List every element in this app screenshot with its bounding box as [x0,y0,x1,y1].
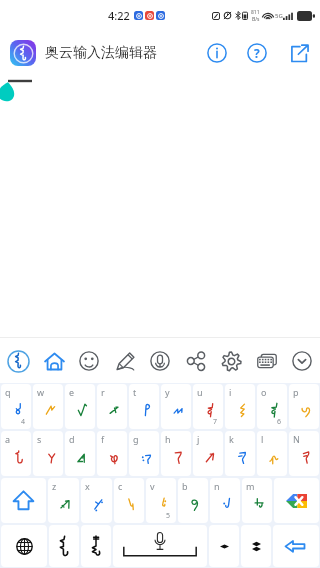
button[interactable]: i [225,384,255,429]
staticText: d [69,433,75,445]
button[interactable]: s [33,431,63,476]
staticText: z [52,480,57,492]
staticText: ? [254,45,260,61]
button[interactable]: Delete [274,478,319,523]
button[interactable]: h [161,431,191,476]
button[interactable]: m [242,478,272,523]
button[interactable]: d [65,431,95,476]
staticText: c [118,480,123,492]
button[interactable]: t [129,384,159,429]
button[interactable]: n [210,478,240,523]
button[interactable]: j [193,431,223,476]
staticText: y [165,386,170,398]
button[interactable]: x [81,478,112,523]
button[interactable]: w [33,384,63,429]
button[interactable]: Enter [273,525,319,567]
staticText: p [293,386,299,398]
button[interactable]: Help [242,38,272,68]
staticText: N [293,433,300,445]
staticText: 6 [277,417,282,427]
button[interactable]: Mongolian letter 1 [49,525,79,567]
staticText: e [69,386,75,398]
staticText: 7 [213,417,218,427]
button[interactable]: Keyboard layout [252,346,282,376]
staticText: 4 [21,417,26,427]
staticText: t [133,386,137,398]
button[interactable]: e [65,384,95,429]
button[interactable]: Home [39,346,69,376]
staticText: g [133,433,139,445]
staticText: 4:22 [108,8,130,23]
button[interactable]: q [1,384,31,429]
button[interactable]: Input method [3,346,33,376]
button[interactable]: o [257,384,287,429]
staticText: a [5,433,11,445]
staticText: u [197,386,203,398]
button[interactable]: Collapse keyboard [287,346,317,376]
staticText: n [214,480,220,492]
button[interactable]: Colon [241,525,271,567]
button[interactable]: f [97,431,127,476]
staticText: b [182,480,188,492]
button[interactable]: k [225,431,255,476]
button[interactable]: p [289,384,319,429]
button[interactable]: g [129,431,159,476]
button[interactable]: l [257,431,287,476]
button[interactable]: v [146,478,176,523]
button[interactable]: Share [181,346,211,376]
button[interactable]: Handwriting [110,346,140,376]
button[interactable]: b [178,478,208,523]
button[interactable]: Space [113,525,207,567]
button[interactable]: c [114,478,144,523]
staticText: o [261,386,267,398]
staticText: m [246,480,255,492]
staticText: 5G [275,12,283,20]
staticText: h [165,433,171,445]
staticText: j [197,433,200,445]
staticText: r [101,386,105,398]
staticText: w [37,386,45,398]
staticText: B/s [252,16,260,23]
staticText: v [150,480,155,492]
button[interactable]: Settings [216,346,246,376]
staticText: s [37,433,42,445]
staticText: i [229,386,232,398]
staticText: 奥云输入法编辑器 [45,44,157,62]
button[interactable]: Dot [209,525,239,567]
button[interactable]: Mongolian letter 2 [81,525,111,567]
staticText: q [5,386,11,398]
button[interactable]: Language [1,525,47,567]
button[interactable]: r [97,384,127,429]
button[interactable]: y [161,384,191,429]
button[interactable]: Share [284,38,314,68]
staticText: l [261,433,264,445]
button[interactable]: Voice input [145,346,175,376]
staticText: x [85,480,90,492]
button[interactable]: Info [202,38,232,68]
button[interactable]: N [289,431,319,476]
button[interactable]: Emoji [74,346,104,376]
button[interactable]: u [193,384,223,429]
button[interactable]: z [48,478,79,523]
button[interactable]: Shift [1,478,46,523]
staticText: 5 [166,511,171,521]
staticText: k [229,433,234,445]
staticText: 811 [251,9,260,16]
staticText: f [101,433,105,445]
button[interactable]: a [1,431,31,476]
button[interactable]: App icon [10,40,36,66]
